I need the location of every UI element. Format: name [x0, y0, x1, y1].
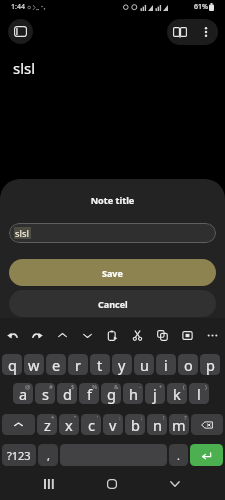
staticText: 1:44	[11, 2, 25, 12]
button[interactable]: l	[189, 383, 209, 404]
button[interactable]: w	[24, 354, 44, 375]
button[interactable]: h	[123, 383, 143, 404]
staticText: '	[97, 414, 99, 422]
staticText: g	[107, 384, 116, 404]
staticText: !	[163, 414, 165, 422]
button[interactable]: selectall	[175, 319, 200, 352]
button[interactable]: g	[101, 383, 121, 404]
staticText: r	[75, 355, 81, 375]
button[interactable]: s	[35, 383, 55, 404]
staticText: j	[153, 384, 157, 404]
button[interactable]: y	[112, 354, 132, 375]
staticText: u	[140, 355, 149, 375]
staticText: (	[183, 383, 185, 391]
button[interactable]: f	[79, 383, 99, 404]
staticText: Save	[102, 267, 123, 279]
button[interactable]: Cancel	[9, 290, 216, 317]
staticText: #	[49, 383, 53, 391]
staticText: v	[109, 415, 117, 435]
button[interactable]: m	[169, 414, 189, 435]
staticText: y	[118, 355, 126, 375]
staticText: z	[44, 415, 51, 435]
button[interactable]: slsl	[9, 223, 216, 243]
staticText: l	[197, 384, 201, 404]
button[interactable]: r	[68, 354, 88, 375]
staticText: w	[28, 355, 40, 375]
button[interactable]: j	[145, 383, 165, 404]
button[interactable]: d	[57, 383, 77, 404]
staticText: ,	[47, 448, 50, 463]
staticText: 61%	[194, 2, 208, 12]
button[interactable]: ,	[38, 444, 58, 466]
staticText: p	[206, 355, 215, 375]
button[interactable]: z	[37, 414, 57, 435]
staticText: $	[71, 383, 75, 391]
button[interactable]: q	[2, 354, 22, 375]
button[interactable]: up	[50, 319, 75, 352]
button[interactable]: u	[134, 354, 154, 375]
button[interactable]: Home	[91, 469, 133, 499]
button[interactable]: redo	[25, 319, 50, 352]
button[interactable]: t	[90, 354, 110, 375]
button[interactable]: copy	[150, 319, 175, 352]
staticText: c	[88, 415, 95, 435]
button[interactable]: Recent apps	[28, 469, 70, 499]
button[interactable]: down	[75, 319, 100, 352]
staticText: @	[25, 383, 31, 391]
button[interactable]: ?123	[2, 444, 36, 466]
staticText: slsl	[13, 58, 36, 78]
button[interactable]: x	[59, 414, 79, 435]
button[interactable]: o	[178, 354, 198, 375]
staticText: ?123	[7, 448, 31, 463]
staticText: q	[8, 355, 17, 375]
staticText: b	[131, 415, 140, 435]
staticText: :	[119, 414, 121, 422]
staticText: i	[164, 355, 168, 375]
button[interactable]: Reading mode	[167, 19, 193, 45]
staticText: f	[87, 384, 92, 404]
button[interactable]: a	[13, 383, 33, 404]
button[interactable]: More options	[193, 19, 218, 45]
button[interactable]: b	[125, 414, 145, 435]
button[interactable]: c	[81, 414, 101, 435]
staticText: o	[184, 355, 193, 375]
button[interactable]: n	[147, 414, 167, 435]
button[interactable]: k	[167, 383, 187, 404]
staticText: "	[74, 414, 77, 422]
staticText: )	[205, 383, 207, 391]
button[interactable]	[2, 414, 35, 435]
staticText: n	[153, 415, 162, 435]
staticText: *	[51, 414, 55, 422]
button[interactable]: e	[46, 354, 66, 375]
staticText: -	[139, 383, 141, 391]
staticText: &	[114, 383, 119, 391]
staticText: e	[52, 355, 61, 375]
staticText: x	[65, 415, 73, 435]
staticText: .	[177, 448, 180, 463]
staticText: ?	[184, 414, 187, 422]
staticText: %	[92, 383, 97, 391]
button[interactable]: cut	[125, 319, 150, 352]
staticText: k	[173, 384, 181, 404]
staticText: Note title	[0, 194, 225, 206]
button[interactable]: Back	[154, 469, 196, 499]
button[interactable]	[190, 444, 223, 466]
button[interactable]: .	[169, 444, 188, 466]
button[interactable]: i	[156, 354, 176, 375]
button[interactable]: Save	[9, 259, 216, 286]
button[interactable]: more	[200, 319, 225, 352]
staticText: +	[159, 383, 163, 391]
button[interactable]: paste	[100, 319, 125, 352]
staticText: ;	[141, 414, 143, 422]
button[interactable]: undo	[0, 319, 25, 352]
staticText: h	[129, 384, 138, 404]
staticText: slsl	[15, 227, 30, 239]
button[interactable]: Navigation drawer	[8, 19, 33, 44]
staticText: t	[97, 355, 103, 375]
staticText: m	[172, 415, 186, 435]
button[interactable]: p	[200, 354, 220, 375]
button[interactable]: v	[103, 414, 123, 435]
button[interactable]	[191, 414, 223, 435]
staticText: a	[19, 384, 28, 404]
